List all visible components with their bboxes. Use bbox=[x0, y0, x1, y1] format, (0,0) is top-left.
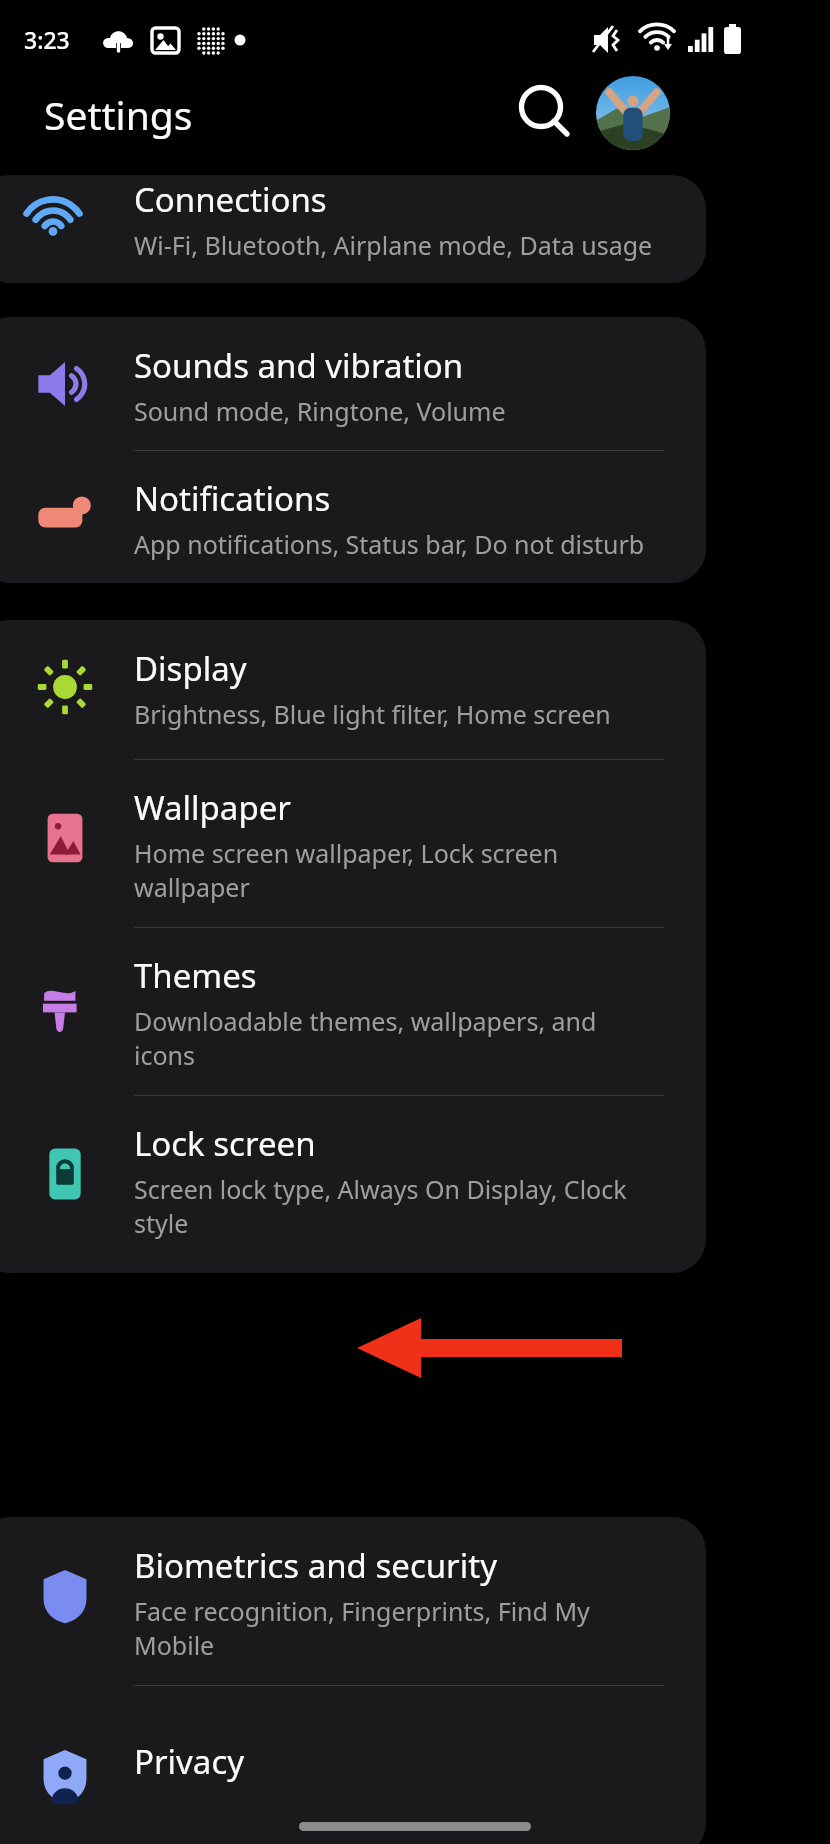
button[interactable]: Privacy bbox=[0, 1685, 706, 1844]
button[interactable]: Sounds and vibration bbox=[0, 317, 706, 450]
staticText: Wallpaper bbox=[134, 785, 291, 830]
staticText: Privacy bbox=[134, 1739, 245, 1784]
staticText: Sound mode, Ringtone, Volume bbox=[134, 394, 506, 428]
staticText: Brightness, Blue light filter, Home scre… bbox=[134, 697, 611, 731]
staticText: 3:23 bbox=[24, 24, 70, 55]
staticText: icons bbox=[134, 1038, 196, 1072]
staticText: Display bbox=[134, 646, 247, 691]
button[interactable]: Search bbox=[508, 76, 582, 150]
staticText: Downloadable themes, wallpapers, and bbox=[134, 1004, 597, 1038]
staticText: Mobile bbox=[134, 1628, 215, 1662]
staticText: Home screen wallpaper, Lock screen bbox=[134, 836, 559, 870]
staticText: wallpaper bbox=[134, 870, 250, 904]
staticText: style bbox=[134, 1206, 189, 1240]
staticText: Face recognition, Fingerprints, Find My bbox=[134, 1594, 590, 1628]
staticText: Connections bbox=[134, 177, 327, 222]
staticText: Biometrics and security bbox=[134, 1543, 497, 1588]
staticText: Screen lock type, Always On Display, Clo… bbox=[134, 1172, 627, 1206]
button[interactable]: Themes bbox=[0, 927, 706, 1095]
staticText: Sounds and vibration bbox=[134, 343, 464, 388]
staticText: Themes bbox=[134, 953, 257, 998]
button[interactable]: Account bbox=[596, 76, 670, 150]
button[interactable]: Lock screen bbox=[0, 1095, 706, 1263]
staticText: Settings bbox=[44, 88, 193, 141]
button[interactable]: Display bbox=[0, 620, 706, 753]
staticText: Notifications bbox=[134, 476, 331, 521]
staticText: Wi-Fi, Bluetooth, Airplane mode, Data us… bbox=[134, 228, 653, 262]
button[interactable]: Connections bbox=[0, 175, 706, 283]
button[interactable]: Biometrics and security bbox=[0, 1517, 706, 1685]
button[interactable]: Wallpaper bbox=[0, 759, 706, 927]
button[interactable]: Notifications bbox=[0, 450, 706, 583]
staticText: App notifications, Status bar, Do not di… bbox=[134, 527, 645, 561]
staticText: Lock screen bbox=[134, 1121, 316, 1166]
